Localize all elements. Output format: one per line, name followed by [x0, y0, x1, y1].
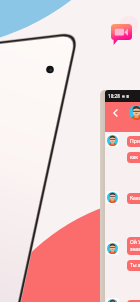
- staticText: Како: [130, 195, 140, 202]
- staticText: знае: [130, 246, 140, 253]
- staticText: 18:28: [108, 93, 120, 99]
- button[interactable]: Video chat: [111, 24, 132, 45]
- button[interactable]: Како: [105, 191, 140, 204]
- button[interactable]: Back: [105, 102, 140, 132]
- button[interactable]: Back: [113, 109, 118, 117]
- staticText: Прив: [130, 138, 140, 145]
- button[interactable]: Ой У: [105, 237, 140, 271]
- button[interactable]: Да: [105, 298, 140, 302]
- staticText: Ой У: [130, 239, 140, 246]
- staticText: как: [130, 154, 138, 161]
- button[interactable]: Contact profile: [129, 105, 140, 120]
- button[interactable]: Прив: [105, 134, 140, 163]
- staticText: Ты з: [130, 262, 140, 269]
